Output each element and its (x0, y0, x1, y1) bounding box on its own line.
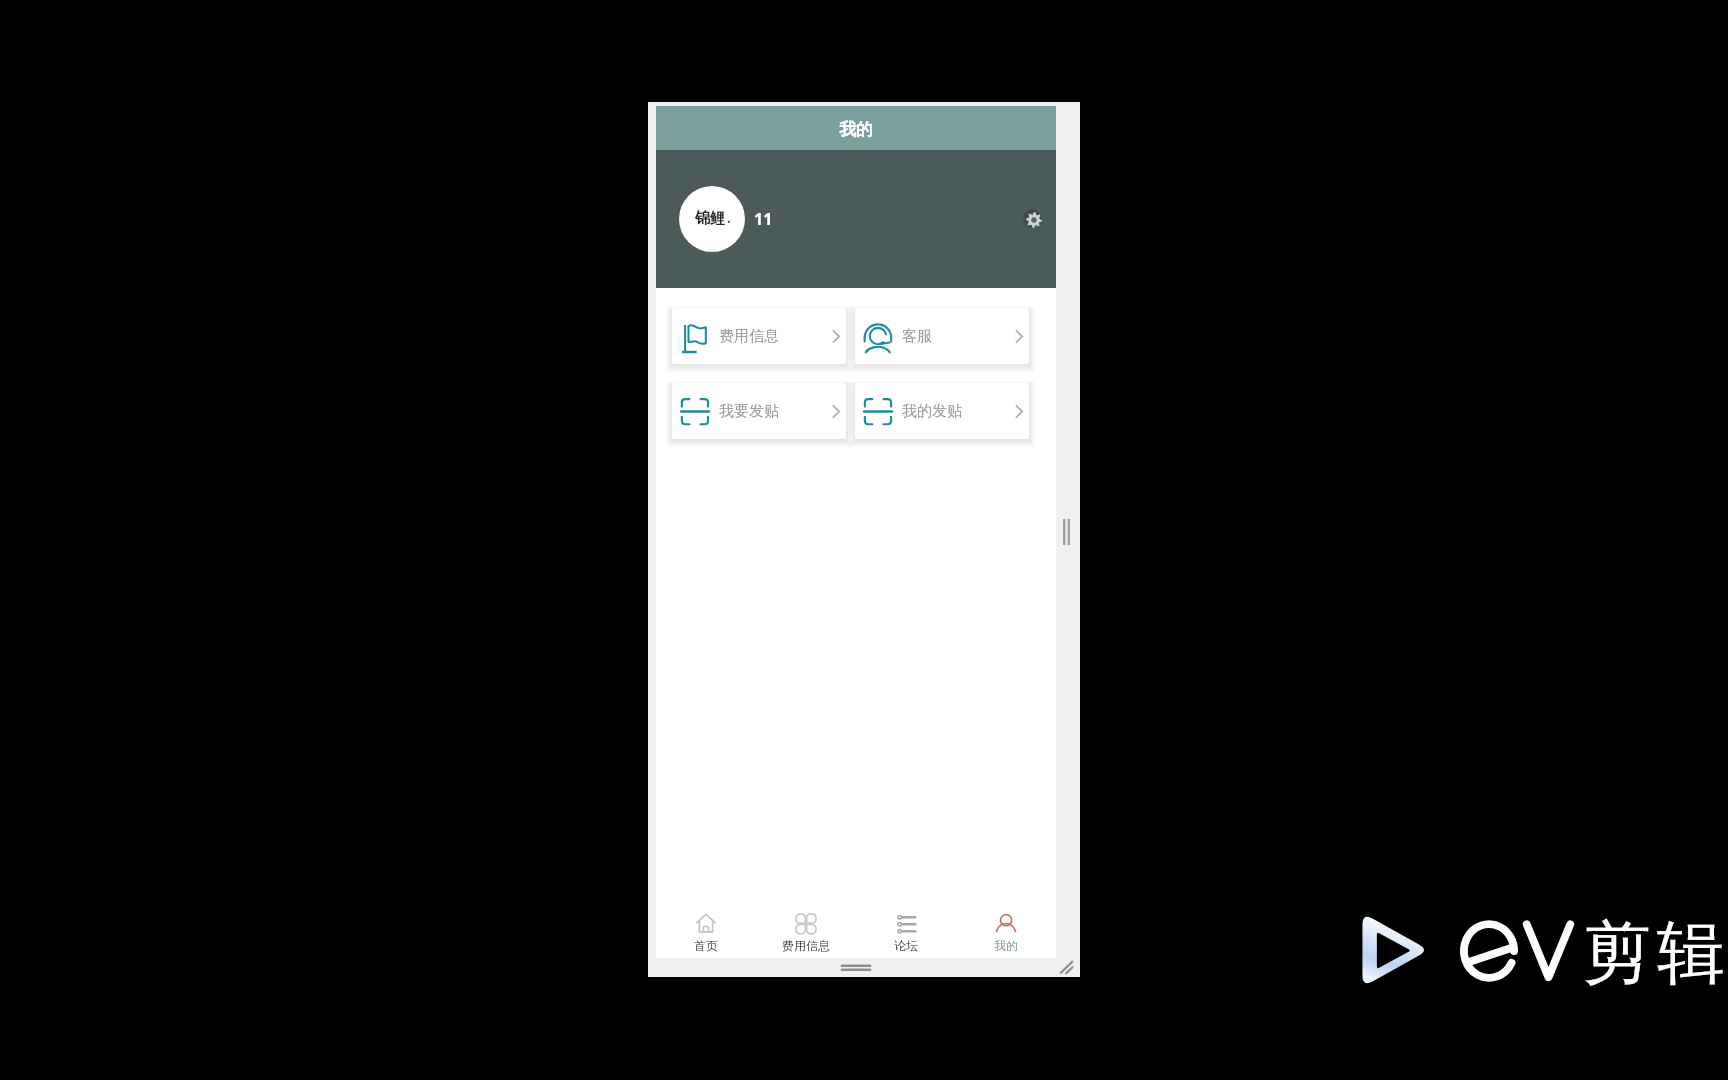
staticText: 锦鲤 (695, 209, 725, 228)
staticText: 剪辑 (1580, 911, 1728, 997)
staticText: 我的 (994, 938, 1018, 953)
button[interactable]: 论坛 (856, 892, 956, 958)
staticText: 首页 (694, 938, 718, 953)
staticText: 论坛 (894, 938, 918, 953)
staticText: 11 (754, 208, 773, 230)
button[interactable]: Avatar (679, 186, 745, 252)
button[interactable]: 首页 (656, 892, 756, 958)
staticText: 客服 (902, 327, 932, 346)
button[interactable]: Settings (1020, 206, 1048, 234)
button[interactable]: 客服 (855, 308, 1029, 364)
staticText: 我的发贴 (902, 402, 962, 421)
staticText: 费用信息 (782, 938, 830, 953)
button[interactable]: 我要发贴 (672, 383, 846, 439)
button[interactable]: 我的发贴 (855, 383, 1029, 439)
button[interactable]: 我的 (956, 892, 1056, 958)
button[interactable]: 费用信息 (672, 308, 846, 364)
staticText: 费用信息 (719, 327, 779, 346)
button[interactable]: 费用信息 (756, 892, 856, 958)
staticText: 我要发贴 (719, 402, 779, 421)
staticText: 我的 (839, 119, 873, 140)
